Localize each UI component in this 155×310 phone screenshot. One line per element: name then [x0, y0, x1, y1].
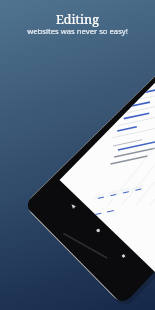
staticText: Editing [0, 11, 155, 28]
staticText: websites was never so easy! [0, 26, 155, 36]
